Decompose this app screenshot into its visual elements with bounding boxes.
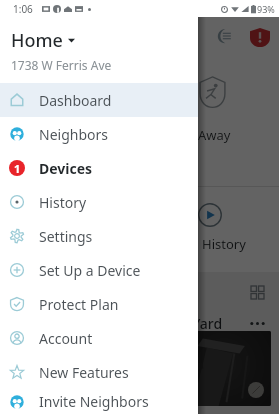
button[interactable]: Neighbors [0, 117, 198, 151]
staticText: 1738 W Ferris Ave [11, 57, 112, 73]
staticText: 1 [14, 161, 21, 176]
button[interactable]: Grid view [248, 283, 267, 302]
staticText: Settings [39, 227, 93, 246]
button[interactable]: Dashboard [0, 83, 198, 117]
button[interactable]: Away [166, 58, 259, 186]
staticText: History [202, 235, 246, 253]
staticText: Dashboard [39, 91, 112, 110]
staticText: Front Yard [153, 314, 223, 333]
staticText: Neighbors [39, 125, 108, 144]
staticText: Invite Neighbors [39, 392, 149, 411]
button[interactable]: Invite Neighbors [0, 389, 198, 414]
button[interactable]: History [0, 185, 198, 219]
button[interactable]: Account [0, 321, 198, 355]
button[interactable]: History [178, 187, 271, 272]
staticText: Away [198, 126, 231, 144]
staticText: Protect Plan [39, 295, 119, 314]
staticText: 1:06 [13, 2, 33, 16]
button[interactable]: Live view [248, 382, 264, 398]
staticText: Devices [39, 159, 93, 178]
button[interactable]: Camera preview [9, 331, 271, 406]
button[interactable]: 1 [0, 151, 198, 185]
button[interactable]: New Features [0, 355, 198, 389]
button[interactable]: Modes [209, 23, 235, 49]
staticText: History [39, 193, 87, 212]
staticText: 93% [257, 3, 275, 15]
button[interactable]: Emergency [247, 24, 273, 50]
button[interactable]: More options [248, 314, 266, 332]
staticText: Set Up a Device [39, 261, 141, 280]
button[interactable]: Set Up a Device [0, 253, 198, 287]
staticText: New Features [39, 363, 129, 382]
staticText: Account [39, 329, 93, 348]
button[interactable]: Protect Plan [0, 287, 198, 321]
button[interactable]: Settings [0, 219, 198, 253]
staticText: Home [11, 28, 63, 53]
